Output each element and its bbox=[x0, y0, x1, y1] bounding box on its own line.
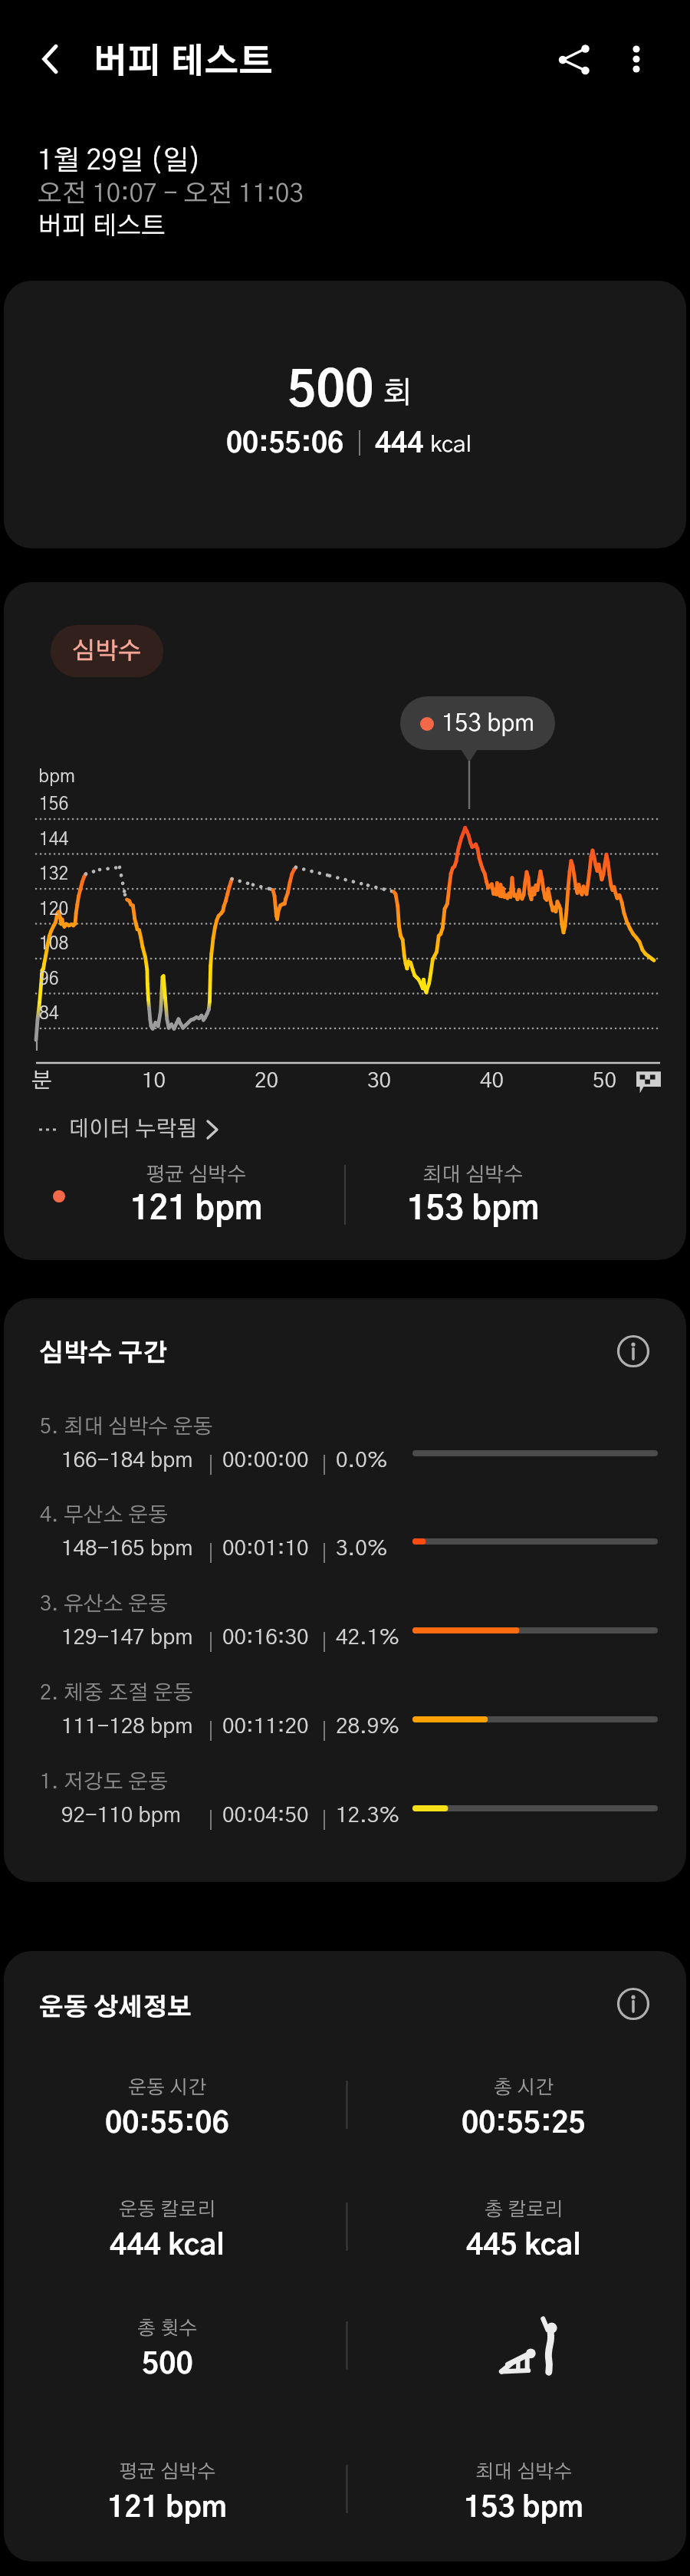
staticText: 00:04:50 bbox=[222, 1805, 309, 1827]
staticText: 1월 29일 (일) bbox=[38, 147, 202, 175]
staticText: 2. 체중 조절 운동 bbox=[40, 1683, 193, 1703]
button[interactable]: 데이터 누락됨 bbox=[34, 1116, 222, 1143]
staticText: 총 칼로리 bbox=[485, 2200, 563, 2219]
staticText: 회 bbox=[383, 378, 412, 409]
staticText: 12.3% bbox=[336, 1805, 400, 1827]
staticText: 92-110 bpm bbox=[61, 1805, 182, 1827]
staticText: 최대 심박수 bbox=[475, 2462, 573, 2482]
staticText: 10 bbox=[142, 1071, 166, 1092]
staticText: 153 bpm bbox=[464, 2494, 583, 2523]
staticText: 운동 칼로리 bbox=[119, 2200, 216, 2219]
staticText: 심박수 bbox=[72, 640, 142, 663]
staticText: 144 bbox=[39, 831, 69, 849]
staticText: 4. 무산소 운동 bbox=[40, 1505, 169, 1525]
staticText: 00:55:25 bbox=[462, 2110, 586, 2139]
staticText: 153 bpm bbox=[407, 1193, 540, 1225]
staticText: 평균 심박수 bbox=[119, 2462, 216, 2482]
staticText: 108 bbox=[39, 936, 69, 953]
staticText: 444 bbox=[375, 430, 424, 458]
staticText: 00:55:06 bbox=[226, 430, 344, 458]
staticText: 운동 상세정보 bbox=[39, 1995, 192, 2020]
staticText: 20 bbox=[255, 1071, 279, 1092]
staticText: 132 bbox=[39, 866, 69, 883]
staticText: 총 시간 bbox=[494, 2078, 554, 2097]
button[interactable]: Workout details information bbox=[615, 1985, 652, 2022]
button[interactable]: More options bbox=[606, 28, 667, 90]
staticText: 최대 심박수 bbox=[422, 1165, 524, 1185]
staticText: 데이터 누락됨 bbox=[68, 1119, 198, 1140]
button[interactable]: Heart rate zone information bbox=[615, 1333, 652, 1370]
staticText: 1. 저강도 운동 bbox=[40, 1772, 169, 1792]
staticText: 120 bbox=[39, 901, 69, 919]
staticText: 5. 최대 심박수 운동 bbox=[40, 1416, 213, 1437]
staticText: 121 bpm bbox=[107, 2494, 227, 2523]
staticText: 121 bpm bbox=[130, 1193, 263, 1225]
staticText: 50 bbox=[593, 1071, 617, 1092]
staticText: bpm bbox=[38, 768, 75, 786]
staticText: 40 bbox=[480, 1071, 504, 1092]
staticText: 166-184 bpm bbox=[61, 1450, 193, 1472]
staticText: 129-147 bpm bbox=[61, 1627, 193, 1649]
button[interactable] bbox=[34, 1663, 663, 1747]
staticText: 444 kcal bbox=[110, 2232, 225, 2261]
staticText: kcal bbox=[430, 433, 472, 456]
staticText: 총 횟수 bbox=[137, 2319, 198, 2338]
staticText: 00:55:06 bbox=[105, 2110, 229, 2139]
staticText: 00:01:10 bbox=[222, 1538, 309, 1560]
staticText: 156 bbox=[39, 796, 69, 814]
button[interactable] bbox=[34, 1574, 663, 1658]
staticText: 00:16:30 bbox=[222, 1627, 309, 1649]
button[interactable] bbox=[34, 1397, 663, 1481]
staticText: 평균 심박수 bbox=[146, 1165, 247, 1185]
staticText: 00:11:20 bbox=[222, 1716, 309, 1738]
staticText: 00:00:00 bbox=[222, 1450, 309, 1472]
staticText: 운동 시간 bbox=[128, 2078, 207, 2097]
staticText: 42.1% bbox=[336, 1627, 400, 1649]
button[interactable]: Back bbox=[23, 31, 78, 87]
button[interactable]: 심박수 bbox=[51, 625, 163, 677]
staticText: 오전 10:07 - 오전 11:03 bbox=[38, 182, 304, 207]
staticText: 30 bbox=[367, 1071, 392, 1092]
staticText: 500 bbox=[287, 367, 374, 416]
staticText: 3.0% bbox=[336, 1538, 388, 1560]
button[interactable]: Share bbox=[544, 28, 605, 90]
staticText: 148-165 bpm bbox=[61, 1538, 193, 1560]
staticText: 445 kcal bbox=[466, 2232, 581, 2261]
staticText: 111-128 bpm bbox=[61, 1716, 193, 1738]
staticText: 84 bbox=[39, 1005, 59, 1023]
staticText: 0.0% bbox=[336, 1450, 388, 1472]
staticText: 3. 유산소 운동 bbox=[40, 1594, 169, 1614]
button[interactable] bbox=[34, 1485, 663, 1569]
staticText: 심박수 구간 bbox=[39, 1341, 168, 1366]
button[interactable] bbox=[34, 1752, 663, 1836]
staticText: 500 bbox=[142, 2351, 193, 2380]
staticText: 28.9% bbox=[336, 1716, 400, 1738]
staticText: 버피 테스트 bbox=[93, 45, 274, 80]
staticText: 버피 테스트 bbox=[38, 214, 166, 239]
staticText: 분 bbox=[31, 1071, 52, 1092]
staticText: 153 bpm bbox=[442, 712, 535, 735]
staticText: 96 bbox=[39, 971, 59, 989]
